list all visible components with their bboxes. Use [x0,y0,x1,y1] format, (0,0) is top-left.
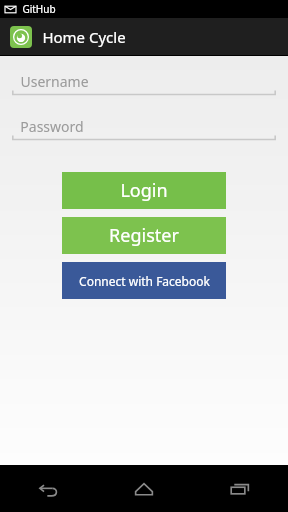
staticText: Connect with Facebook [79,273,210,289]
button[interactable]: Connect with Facebook [62,262,226,299]
staticText: Home Cycle [42,27,126,47]
button[interactable]: Home [96,465,192,512]
staticText: GitHub [22,2,56,16]
button[interactable]: Login [62,172,226,209]
button[interactable]: Password [12,115,276,142]
staticText: Password [20,117,84,136]
button[interactable]: Back [0,465,96,512]
button[interactable]: Recent apps [192,465,288,512]
button[interactable]: Username [12,70,276,97]
staticText: Register [109,223,179,248]
button[interactable]: Register [62,217,226,254]
staticText: Username [20,72,89,91]
staticText: Login [120,178,168,203]
